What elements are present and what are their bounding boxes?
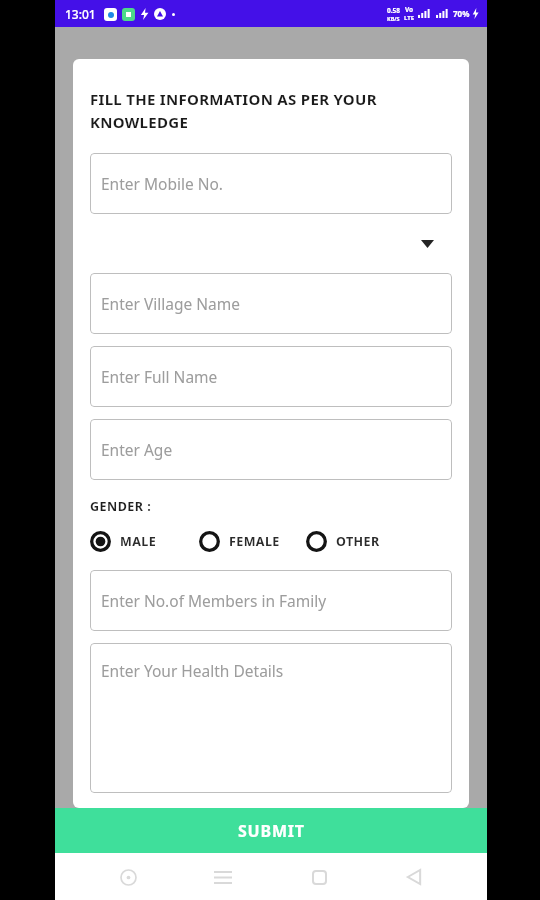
staticText: 0.58	[387, 6, 400, 15]
button[interactable]: Enter No.of Members in Family	[90, 570, 452, 631]
button[interactable]: Enter Village Name	[90, 273, 452, 334]
button[interactable]: Enter Age	[90, 419, 452, 480]
staticText: KB/S	[387, 15, 400, 22]
button[interactable]: Enter Your Health Details	[90, 643, 452, 793]
staticText: Enter No.of Members in Family	[101, 590, 327, 611]
staticText: Enter Age	[101, 439, 173, 460]
staticText: FEMALE	[229, 533, 280, 550]
staticText: SUBMIT	[238, 820, 305, 842]
staticText: 13:01	[65, 6, 96, 22]
staticText: Enter Your Health Details	[101, 660, 284, 681]
staticText: LTE	[404, 14, 415, 22]
staticText: 70%	[453, 8, 470, 19]
staticText: Vo	[405, 5, 414, 14]
button[interactable]: Enter Mobile No.	[90, 153, 452, 214]
staticText: OTHER	[336, 533, 380, 550]
button[interactable]: Enter Full Name	[90, 346, 452, 407]
button[interactable]: Assistant	[106, 855, 150, 899]
button[interactable]: SUBMIT	[55, 808, 487, 853]
staticText: MALE	[120, 533, 157, 550]
button[interactable]: FEMALE	[199, 531, 280, 552]
staticText: Enter Full Name	[101, 366, 218, 387]
staticText: Enter Village Name	[101, 293, 240, 314]
button[interactable]: Recent apps	[201, 855, 245, 899]
button[interactable]: MALE	[90, 531, 157, 552]
button[interactable]: OTHER	[306, 531, 380, 552]
staticText: Enter Mobile No.	[101, 173, 224, 194]
button[interactable]: Select option	[90, 214, 452, 273]
button[interactable]: Back	[392, 855, 436, 899]
staticText: FILL THE INFORMATION AS PER YOUR KNOWLED…	[90, 89, 377, 132]
button[interactable]: Home	[297, 855, 341, 899]
staticText: GENDER :	[90, 498, 152, 515]
